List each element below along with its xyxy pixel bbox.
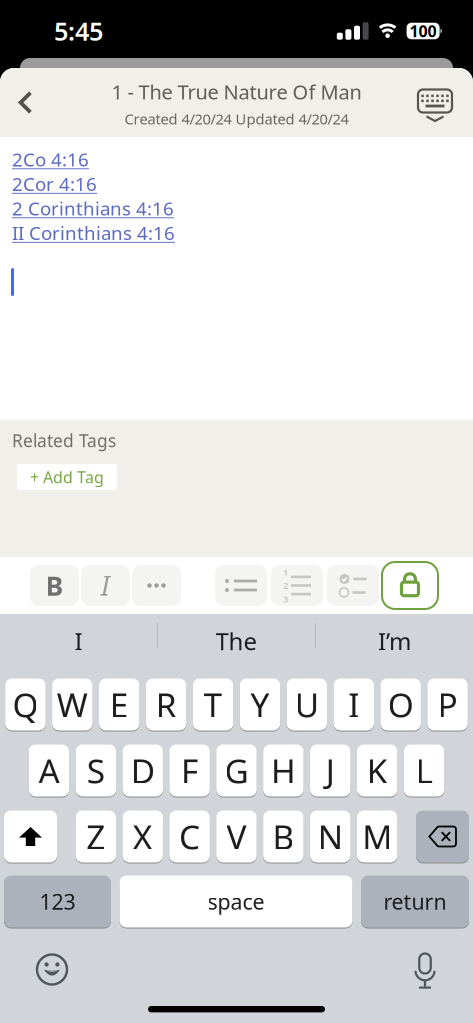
button[interactable]: G	[216, 744, 257, 797]
button[interactable]: T	[193, 678, 233, 731]
button[interactable]: Dictate	[414, 950, 473, 988]
staticText: X	[133, 814, 153, 859]
button[interactable]: + Add Tag	[17, 464, 117, 490]
staticText: I’m	[378, 625, 411, 657]
staticText: 100	[410, 20, 437, 42]
button[interactable]: return	[361, 875, 469, 928]
staticText: S	[87, 748, 105, 793]
button[interactable]: 2Cor 4:16	[12, 171, 97, 196]
staticText: T	[203, 682, 222, 727]
staticText: B	[272, 814, 294, 859]
button[interactable]: Shift	[4, 810, 57, 863]
staticText: D	[131, 748, 155, 793]
button[interactable]: H	[263, 744, 304, 797]
button[interactable]: Italic	[81, 565, 130, 606]
staticText: Created 4/20/24 Updated 4/20/24	[124, 109, 348, 128]
button[interactable]: 2Co 4:16	[12, 147, 89, 171]
button[interactable]: Emoji	[0, 954, 67, 984]
staticText: E	[110, 682, 129, 727]
button[interactable]: More Formatting	[132, 565, 181, 606]
button[interactable]: 2 Corinthians 4:16	[12, 196, 174, 220]
staticText: 5:45	[54, 14, 103, 48]
button[interactable]: Numbered List	[271, 565, 323, 606]
staticText: I	[348, 682, 359, 727]
button[interactable]: Bold	[30, 565, 79, 606]
button[interactable]: L	[404, 744, 444, 797]
staticText: Related Tags	[12, 429, 116, 452]
staticText: G	[224, 748, 248, 793]
button[interactable]: V	[216, 810, 257, 863]
button[interactable]: Checklist	[327, 565, 379, 606]
button[interactable]: I’m	[316, 614, 473, 657]
staticText: return	[383, 887, 446, 916]
button[interactable]: II Corinthians 4:16	[12, 220, 175, 245]
staticText: II Corinthians 4:16	[12, 220, 175, 245]
staticText: Q	[12, 682, 38, 727]
staticText: R	[156, 682, 177, 727]
staticText: 2 Corinthians 4:16	[12, 196, 174, 221]
button[interactable]: F	[169, 744, 210, 797]
button[interactable]: W	[52, 678, 93, 731]
button[interactable]: U	[287, 678, 327, 731]
staticText: F	[181, 748, 198, 793]
button[interactable]: A	[29, 744, 69, 797]
staticText: Z	[86, 814, 105, 859]
button[interactable]: R	[146, 678, 186, 731]
staticText: W	[57, 682, 88, 727]
button[interactable]: Bulleted List	[215, 565, 267, 606]
staticText: O	[388, 682, 414, 727]
staticText: 123	[39, 887, 75, 916]
button[interactable]: Y	[240, 678, 280, 731]
staticText: Y	[250, 682, 269, 727]
staticText: 1 - The True Nature Of Man	[111, 78, 361, 105]
button[interactable]: Z	[76, 810, 116, 863]
button[interactable]: Lock	[382, 562, 438, 609]
button[interactable]: Dismiss Keyboard	[418, 68, 473, 137]
staticText: U	[295, 682, 319, 727]
staticText: 3	[283, 593, 288, 605]
button[interactable]: J	[310, 744, 350, 797]
staticText: C	[179, 814, 200, 859]
staticText: 2	[283, 579, 288, 592]
button[interactable]: X	[122, 810, 163, 863]
staticText: A	[38, 748, 59, 793]
button[interactable]: C	[169, 810, 210, 863]
staticText: I	[74, 625, 82, 657]
button[interactable]: M	[357, 810, 397, 863]
staticText: M	[362, 814, 392, 859]
staticText: B	[45, 568, 63, 603]
staticText: + Add Tag	[30, 466, 104, 488]
button[interactable]: N	[310, 810, 351, 863]
button[interactable]: The	[158, 614, 315, 657]
staticText: H	[271, 748, 296, 793]
button[interactable]: B	[263, 810, 304, 863]
staticText: N	[318, 814, 343, 859]
button[interactable]: Back	[0, 68, 43, 137]
button[interactable]: E	[99, 678, 139, 731]
staticText: 2Cor 4:16	[12, 171, 97, 196]
staticText: The	[215, 625, 257, 657]
staticText: J	[326, 748, 335, 793]
button[interactable]: Delete	[416, 810, 469, 863]
button[interactable]: I	[0, 614, 157, 657]
staticText: space	[207, 887, 264, 916]
staticText: I	[101, 568, 110, 603]
staticText: 2Co 4:16	[12, 147, 89, 172]
button[interactable]: D	[122, 744, 163, 797]
staticText: L	[416, 748, 433, 793]
button[interactable]: space	[119, 875, 352, 928]
button[interactable]: O	[380, 678, 421, 731]
staticText: 1	[283, 566, 288, 578]
button[interactable]: Q	[5, 678, 46, 731]
button[interactable]: P	[427, 678, 468, 731]
staticText: V	[226, 814, 246, 859]
staticText: K	[367, 748, 388, 793]
button[interactable]: S	[76, 744, 116, 797]
button[interactable]: K	[357, 744, 397, 797]
staticText: P	[437, 682, 457, 727]
button[interactable]: 123	[4, 875, 111, 928]
button[interactable]: I	[333, 678, 374, 731]
